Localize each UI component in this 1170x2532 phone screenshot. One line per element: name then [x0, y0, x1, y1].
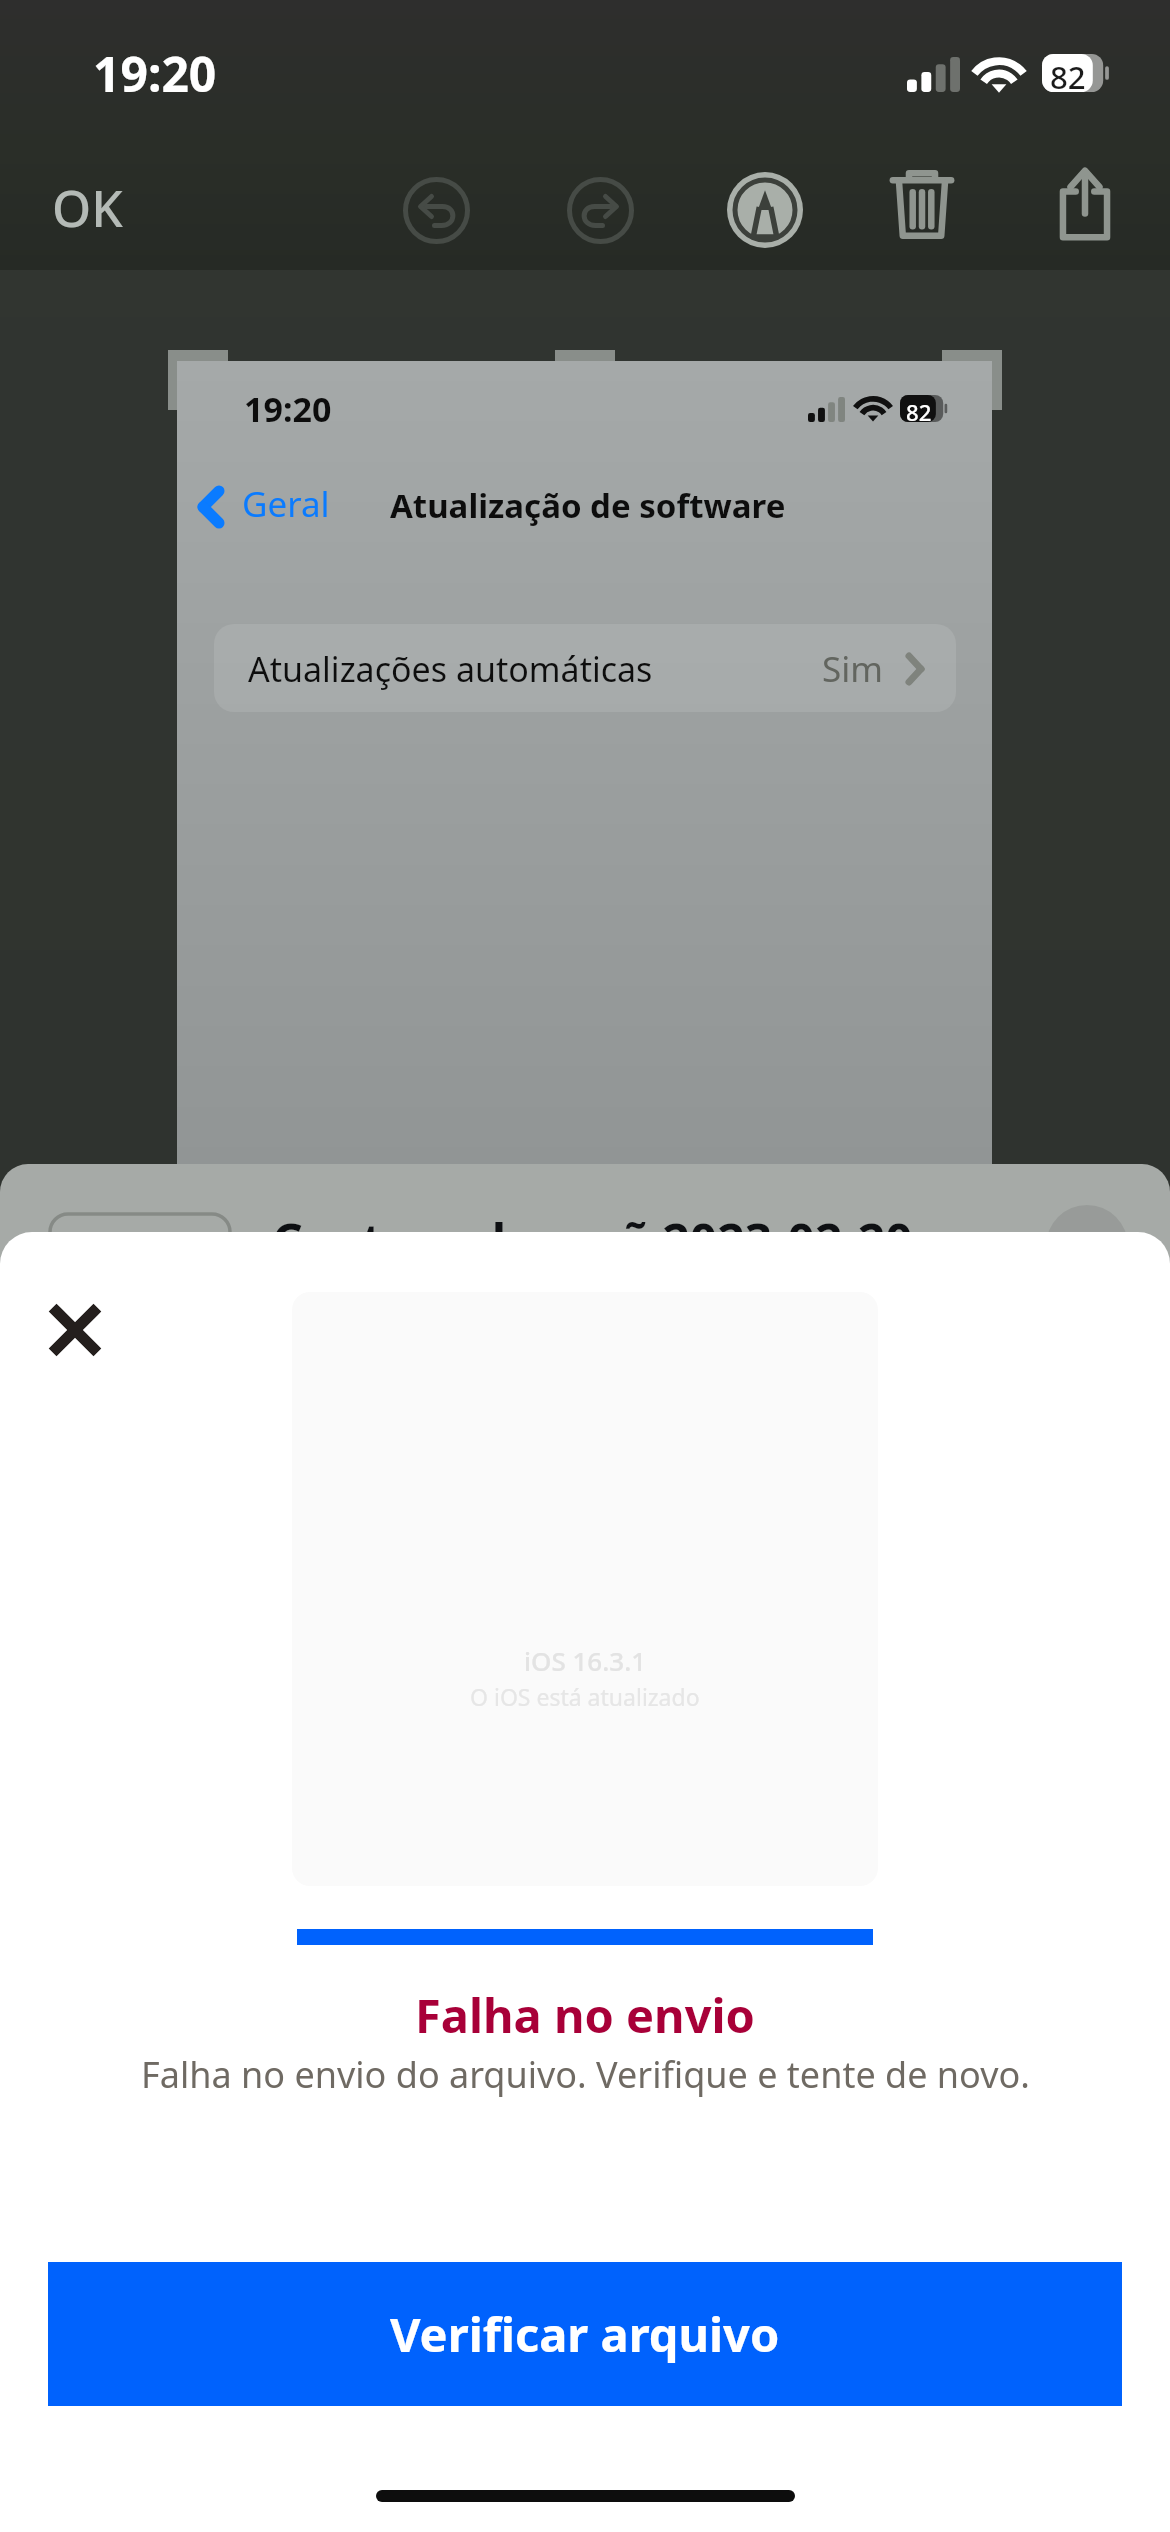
staticText: Sim: [822, 645, 883, 693]
staticText: iOS 16.3.1: [524, 1643, 647, 1678]
staticText: Falha no envio: [415, 1983, 755, 2047]
staticText: Captura de ecrã 2023-02-20: [272, 1208, 913, 1273]
button[interactable]: Delete: [874, 156, 970, 252]
staticText: Atualização de software: [390, 483, 786, 528]
staticText: O iOS está atualizado: [470, 1681, 700, 1712]
button[interactable]: Verificar arquivo: [48, 2262, 1122, 2406]
button[interactable]: Fechar: [27, 1282, 123, 1378]
staticText: 82: [1050, 56, 1086, 94]
staticText: Falha no envio do arquivo. Verifique e t…: [141, 2050, 1030, 2099]
button[interactable]: Markup: [717, 162, 813, 258]
staticText: Verificar arquivo: [390, 2302, 780, 2366]
staticText: Geral: [242, 480, 330, 528]
staticText: 82: [906, 397, 932, 424]
button[interactable]: Undo: [388, 162, 484, 258]
button[interactable]: OK: [30, 162, 142, 258]
staticText: 19:20: [244, 386, 332, 432]
button[interactable]: Redo: [552, 162, 648, 258]
staticText: OK: [52, 174, 123, 242]
staticText: 19:20: [93, 41, 217, 106]
button[interactable]: Atualizações automáticas: [214, 624, 956, 712]
staticText: Atualizações automáticas: [248, 646, 653, 692]
button[interactable]: Share: [1037, 156, 1133, 252]
